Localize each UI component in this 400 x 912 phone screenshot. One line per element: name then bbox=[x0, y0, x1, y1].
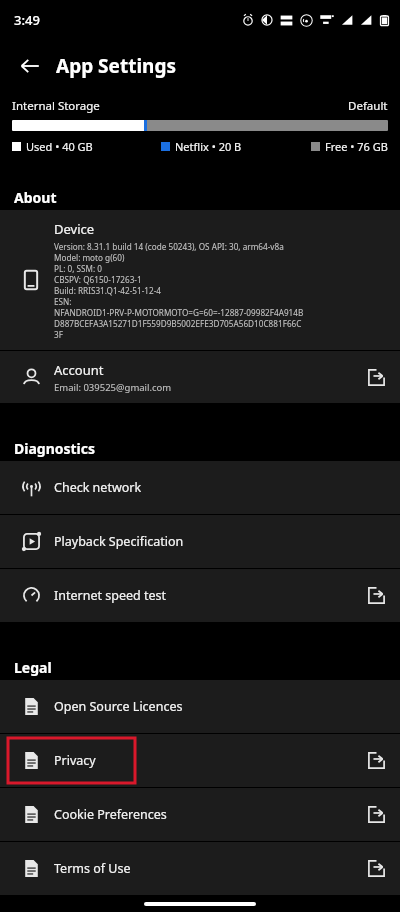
staticText: 3:49 bbox=[14, 11, 40, 29]
staticText: Privacy bbox=[54, 752, 367, 769]
staticText: 3F bbox=[54, 329, 63, 340]
staticText: About bbox=[14, 188, 57, 207]
staticText: Cookie Preferences bbox=[54, 806, 367, 823]
button[interactable]: Check network bbox=[0, 461, 400, 514]
button[interactable]: Cookie Preferences bbox=[0, 788, 400, 841]
staticText: Version: 8.31.1 build 14 (code 50243), O… bbox=[54, 241, 284, 252]
button[interactable]: Terms of Use bbox=[0, 842, 400, 895]
staticText: Internet speed test bbox=[54, 587, 367, 604]
staticText: Build: RRIS31.Q1-42-51-12-4 bbox=[54, 285, 161, 296]
staticText: Device bbox=[54, 220, 95, 238]
staticText: Free • 76 GB bbox=[325, 139, 388, 154]
staticText: ESN: bbox=[54, 296, 72, 307]
button[interactable]: Playback Specification bbox=[0, 515, 400, 568]
staticText: D887BCEFA3A15271D1F559D9B5002EFE3D705A56… bbox=[54, 318, 302, 329]
staticText: Model: moto g(60) bbox=[54, 252, 125, 263]
staticText: PL: 0, SSM: 0 bbox=[54, 263, 102, 274]
staticText: App Settings bbox=[56, 53, 176, 79]
staticText: Open Source Licences bbox=[54, 698, 386, 715]
button[interactable]: Device bbox=[0, 210, 400, 350]
staticText: Playback Specification bbox=[54, 533, 386, 550]
staticText: Terms of Use bbox=[54, 860, 367, 877]
staticText: Email: 039525@gmail.com bbox=[54, 381, 172, 394]
staticText: Diagnostics bbox=[14, 439, 96, 458]
staticText: Netflix • 20 B bbox=[175, 139, 242, 154]
button[interactable]: Privacy bbox=[0, 734, 400, 787]
button[interactable]: Back bbox=[8, 44, 52, 88]
staticText: Check network bbox=[54, 479, 386, 496]
button[interactable]: Account bbox=[0, 351, 400, 403]
button[interactable]: Internet speed test bbox=[0, 569, 400, 622]
button[interactable]: Open Source Licences bbox=[0, 680, 400, 733]
staticText: Used • 40 GB bbox=[26, 139, 93, 154]
staticText: Internal Storage bbox=[12, 98, 100, 114]
staticText: CBSPV: Q6150-17263-1 bbox=[54, 274, 142, 285]
staticText: Account bbox=[54, 361, 104, 379]
staticText: Legal bbox=[14, 658, 52, 677]
staticText: NFANDROID1-PRV-P-MOTORMOTO=G=60=-12887-0… bbox=[54, 307, 304, 318]
staticText: Default bbox=[348, 98, 388, 114]
